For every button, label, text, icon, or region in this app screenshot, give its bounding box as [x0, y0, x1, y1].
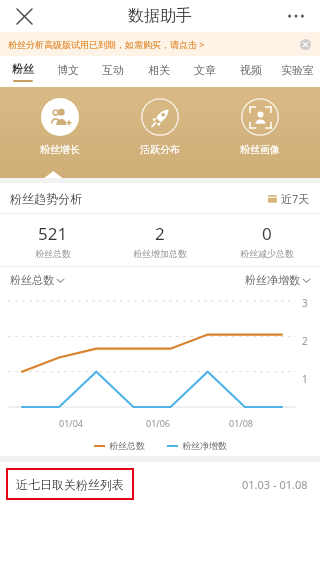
staticText: 粉丝减少总数: [240, 248, 294, 259]
staticText: 粉丝总数: [109, 440, 145, 451]
staticText: 互动: [102, 63, 124, 77]
button[interactable]: Dismiss: [297, 36, 313, 52]
staticText: 01/04: [59, 417, 83, 429]
button[interactable]: 文章: [182, 56, 228, 87]
staticText: 粉丝净增数: [182, 440, 227, 451]
staticText: 数据助手: [128, 6, 192, 26]
staticText: 01/06: [146, 417, 170, 429]
staticText: 粉丝净增数: [245, 273, 300, 287]
staticText: 视频: [240, 63, 262, 77]
staticText: 1: [302, 372, 308, 386]
button[interactable]: 互动: [90, 56, 136, 87]
staticText: 粉丝增长: [40, 143, 80, 156]
staticText: 相关: [148, 63, 170, 77]
staticText: 0: [262, 222, 272, 245]
staticText: 实验室: [281, 63, 314, 77]
staticText: 521: [38, 222, 68, 245]
button[interactable]: 近7天: [268, 191, 310, 206]
staticText: 粉丝总数: [35, 248, 71, 259]
staticText: 粉丝趋势分析: [10, 191, 82, 206]
button[interactable]: 相关: [136, 56, 182, 87]
staticText: 粉丝增加总数: [133, 248, 187, 259]
staticText: 粉丝: [12, 62, 34, 76]
button[interactable]: 0: [213, 214, 320, 266]
staticText: 活跃分布: [140, 143, 180, 156]
staticText: 近七日取关粉丝列表: [16, 477, 124, 492]
button[interactable]: 粉丝分析高级版试用已到期，如需购买，请点击 >: [0, 32, 320, 56]
staticText: 粉丝分析高级版试用已到期，如需购买，请点击 >: [8, 38, 205, 50]
button[interactable]: Close: [8, 0, 40, 32]
button[interactable]: 活跃分布: [120, 98, 200, 156]
button[interactable]: More options: [280, 0, 312, 32]
staticText: 文章: [194, 63, 216, 77]
button[interactable]: 521: [0, 214, 106, 266]
button[interactable]: 粉丝: [0, 56, 45, 87]
staticText: 2: [302, 334, 308, 348]
button[interactable]: 博文: [45, 56, 90, 87]
button[interactable]: 视频: [228, 56, 274, 87]
button[interactable]: 实验室: [274, 56, 320, 87]
staticText: 博文: [57, 63, 79, 77]
staticText: 01/08: [229, 417, 253, 429]
staticText: 粉丝画像: [240, 143, 280, 156]
staticText: 3: [302, 296, 308, 310]
button[interactable]: 粉丝总数: [10, 273, 64, 287]
button[interactable]: 近七日取关粉丝列表: [0, 462, 320, 506]
button[interactable]: 2: [106, 214, 213, 266]
staticText: 粉丝总数: [10, 273, 54, 287]
staticText: 近7天: [281, 191, 310, 206]
button[interactable]: 粉丝画像: [220, 98, 300, 156]
staticText: 01.03 - 01.08: [242, 477, 308, 492]
button[interactable]: 粉丝净增数: [245, 273, 310, 287]
button[interactable]: 粉丝增长: [20, 98, 100, 156]
staticText: 2: [155, 222, 165, 245]
